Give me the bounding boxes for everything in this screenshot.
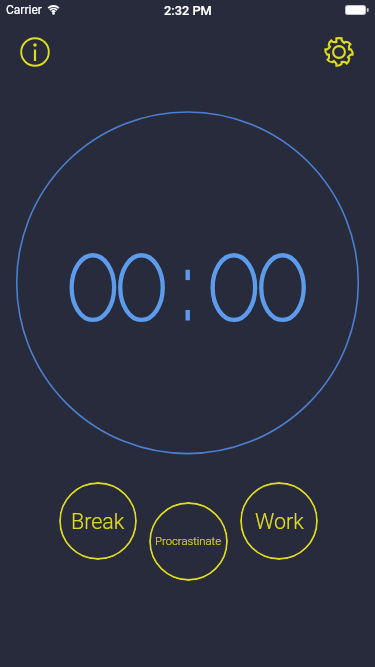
button[interactable] xyxy=(323,36,355,68)
button[interactable]: Break xyxy=(59,482,137,560)
staticText: Work xyxy=(255,509,304,534)
staticText: 2:32 PM xyxy=(164,3,212,18)
button[interactable]: Work xyxy=(240,482,318,560)
staticText: Carrier xyxy=(6,3,42,17)
button[interactable]: Procrastinate xyxy=(149,502,228,581)
staticText: Procrastinate xyxy=(155,535,222,548)
button[interactable] xyxy=(19,36,51,68)
staticText: Break xyxy=(71,509,125,534)
